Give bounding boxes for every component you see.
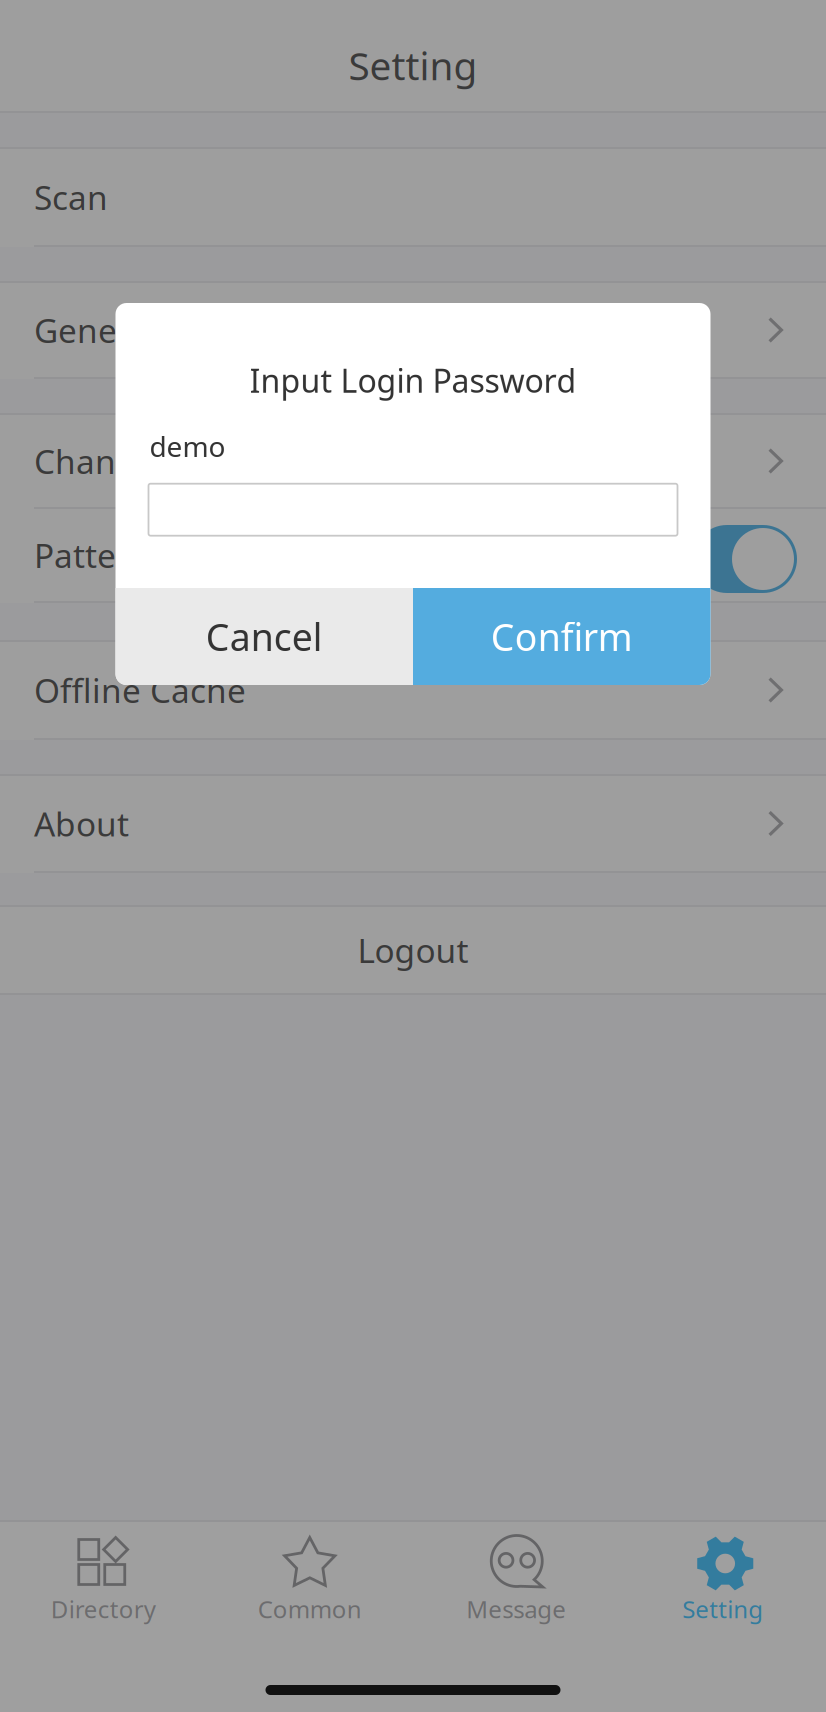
staticText: Pattern Lock [34,533,231,577]
button[interactable]: Offline Cache [0,642,826,738]
button[interactable]: Cancel [115,588,413,685]
staticText: Confirm [491,612,633,661]
staticText: Common [258,1593,362,1625]
button[interactable]: General [0,283,826,377]
staticText: Directory [51,1593,156,1625]
button[interactable]: Logout [0,907,826,993]
button[interactable]: Confirm [413,588,710,685]
staticText: General [34,308,158,352]
staticText: Setting [348,40,477,91]
staticText: Setting [682,1593,763,1625]
button[interactable]: About [0,776,826,871]
staticText: Change Password [34,439,316,483]
button[interactable]: Message [413,1522,619,1629]
staticText: Offline Cache [34,668,246,712]
button[interactable]: Directory [0,1522,206,1629]
staticText: About [34,801,129,846]
button[interactable]: Pattern Lock, on [693,521,797,589]
staticText: Message [466,1593,566,1625]
button[interactable]: Setting [619,1522,826,1629]
button[interactable]: Scan [0,149,826,245]
button[interactable]: Change Password [0,415,826,507]
staticText: demo [149,427,225,465]
staticText: Scan [34,175,108,219]
button[interactable]: Common [206,1522,413,1629]
staticText: Cancel [206,612,323,661]
staticText: Logout [357,928,468,972]
staticText: Input Login Password [249,359,576,401]
